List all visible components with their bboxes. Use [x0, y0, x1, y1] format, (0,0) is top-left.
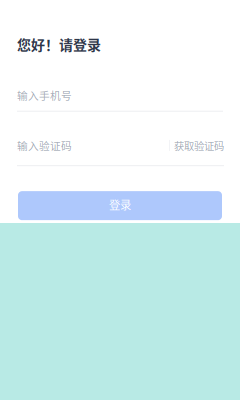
button[interactable]: 输入手机号	[17, 87, 223, 112]
staticText: 获取验证码	[174, 138, 224, 153]
staticText: 输入验证码	[17, 138, 72, 153]
staticText: 输入手机号	[17, 87, 72, 103]
button[interactable]: 登录	[18, 191, 222, 220]
button[interactable]: 输入验证码	[17, 138, 72, 153]
button[interactable]: 获取验证码	[170, 138, 224, 153]
staticText: 您好！请登录	[17, 34, 101, 54]
staticText: 登录	[109, 196, 131, 213]
